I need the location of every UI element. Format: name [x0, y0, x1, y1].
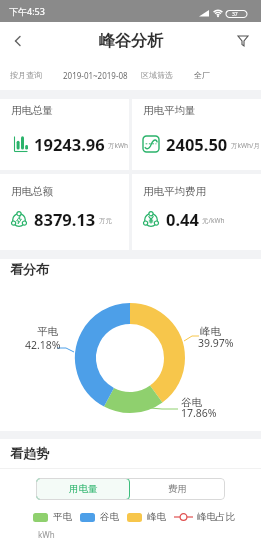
button[interactable]: 峰电占比 [174, 511, 235, 523]
button[interactable] [0, 23, 36, 59]
staticText: kWh [38, 529, 55, 540]
button[interactable]: 全厂 [194, 70, 210, 80]
staticText: 17.86% [181, 406, 217, 420]
staticText: 用电总额 [11, 185, 53, 198]
staticText: 万kWh [108, 141, 129, 150]
button[interactable]: 用电平均费用 [132, 174, 261, 250]
staticText: 用电量 [69, 483, 98, 495]
staticText: 8379.13 [34, 208, 96, 230]
staticText: 39.97% [198, 336, 234, 350]
staticText: 用电平均量 [143, 104, 196, 117]
staticText: 峰电 [200, 325, 221, 338]
button[interactable]: 按月查询 [10, 70, 42, 80]
staticText: 0.44 [166, 208, 199, 230]
button[interactable]: 用电平均量 [132, 99, 261, 170]
staticText: 峰谷分析 [99, 31, 163, 51]
button[interactable]: 用电量 [36, 478, 130, 500]
staticText: 用电总量 [11, 104, 53, 117]
button[interactable]: 用电总量 [0, 99, 129, 170]
button[interactable]: 2019-01~2019-08 [63, 70, 128, 81]
staticText: 用电平均费用 [143, 185, 206, 198]
staticText: 2405.50 [166, 133, 228, 155]
staticText: 看趋势 [10, 445, 49, 461]
staticText: 峰电占比 [197, 511, 235, 523]
button[interactable]: 区域筛选 [141, 70, 173, 80]
button[interactable]: 平电 [33, 511, 72, 523]
button[interactable]: 谷电 [80, 511, 119, 523]
staticText: 峰电 [147, 511, 166, 523]
staticText: 谷电 [100, 511, 119, 523]
staticText: 37 [232, 11, 238, 18]
staticText: 费用 [168, 483, 187, 495]
staticText: 下午4:53 [9, 5, 45, 17]
staticText: 看分布 [10, 261, 49, 277]
staticText: 万元 [99, 217, 112, 225]
staticText: 万kWh/月 [231, 141, 260, 150]
staticText: 19243.96 [34, 133, 105, 155]
staticText: 元/kWh [202, 216, 225, 225]
staticText: 谷电 [181, 396, 202, 409]
staticText: 42.18% [25, 338, 61, 352]
button[interactable] [225, 23, 261, 59]
button[interactable]: 费用 [130, 478, 225, 500]
staticText: 平电 [53, 511, 72, 523]
button[interactable]: 峰电 [127, 511, 166, 523]
button[interactable]: 用电总额 [0, 174, 129, 250]
staticText: 平电 [37, 325, 58, 338]
